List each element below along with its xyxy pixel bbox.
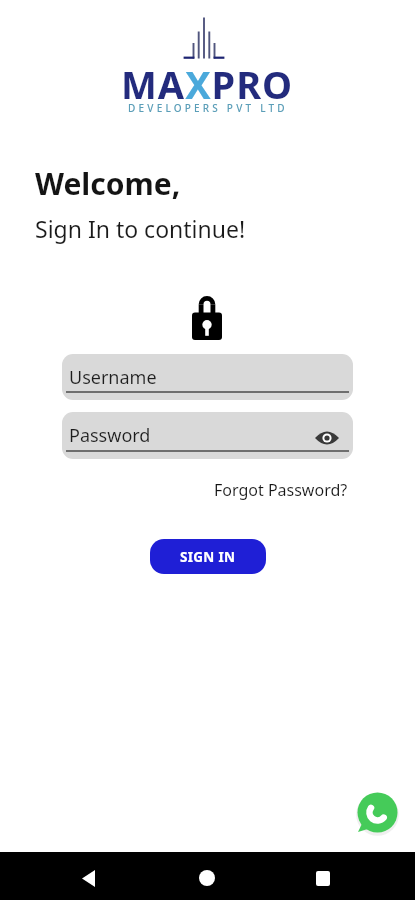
staticText: SIGN IN (180, 548, 236, 566)
button[interactable]: Forgot Password? (214, 479, 348, 501)
staticText: MAXPRO (121, 58, 294, 110)
button[interactable] (356, 791, 399, 834)
staticText: Welcome, (35, 163, 181, 204)
staticText: Password (69, 423, 151, 448)
staticText: Sign In to continue! (35, 213, 246, 244)
button[interactable] (58, 852, 118, 900)
button[interactable] (177, 852, 237, 900)
button[interactable]: Username (62, 354, 353, 400)
staticText: DEVELOPERS PVT LTD (128, 101, 288, 115)
button[interactable] (293, 852, 353, 900)
button[interactable]: Password (62, 412, 353, 459)
button[interactable]: SIGN IN (150, 539, 266, 574)
staticText: Username (69, 365, 157, 390)
